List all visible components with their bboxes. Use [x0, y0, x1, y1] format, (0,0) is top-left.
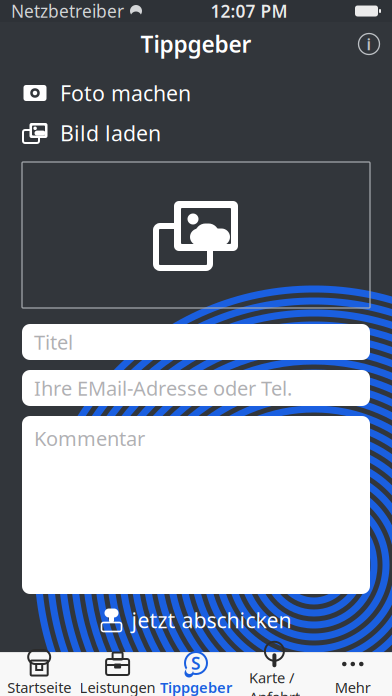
button[interactable]: Leistungen [78, 652, 157, 696]
staticText: Karte / Anfahrt [249, 668, 300, 696]
staticText: Ihre EMail-Adresse oder Tel. [34, 375, 292, 401]
staticText: Foto machen [60, 79, 191, 107]
staticText: Netzbetreiber [11, 0, 124, 22]
staticText: Startseite [7, 677, 71, 696]
button[interactable]: Titel [22, 324, 370, 360]
button[interactable]: S [157, 652, 235, 696]
staticText: Leistungen [80, 677, 156, 696]
button[interactable]: Karte / Anfahrt [235, 652, 314, 696]
button[interactable]: Info [346, 22, 392, 66]
button[interactable]: Foto machen [0, 76, 392, 110]
button[interactable]: jetzt abschicken [84, 604, 307, 636]
staticText: Bild laden [60, 119, 161, 147]
staticText: Titel [34, 329, 73, 355]
button[interactable]: Bild hinzufügen [22, 162, 370, 308]
staticText: jetzt abschicken [131, 606, 291, 634]
button[interactable]: Bild laden [0, 116, 392, 150]
staticText: Kommentar [34, 425, 145, 452]
staticText: Tippgeber [140, 29, 251, 59]
staticText: S [191, 651, 201, 674]
staticText: Tippgeber [160, 677, 232, 696]
button[interactable]: Ihre EMail-Adresse oder Tel. [22, 370, 370, 406]
button[interactable]: Kommentar [22, 416, 370, 594]
staticText: 12:07 PM [210, 0, 287, 22]
button[interactable]: Mehr [314, 652, 392, 696]
staticText: i [366, 33, 371, 55]
button[interactable]: Startseite [0, 652, 78, 696]
staticText: Mehr [335, 677, 371, 696]
